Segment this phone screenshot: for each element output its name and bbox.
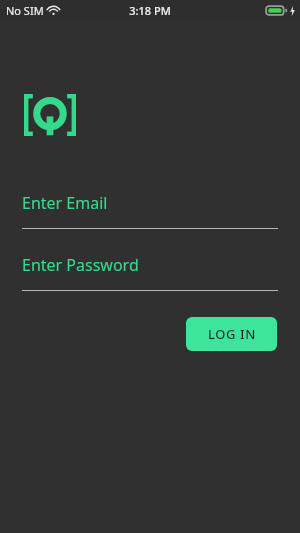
button[interactable]: LOG IN <box>186 317 277 351</box>
staticText: LOG IN <box>208 325 256 343</box>
other: App logo <box>24 94 76 136</box>
button[interactable]: Enter Password <box>22 254 278 291</box>
staticText: Enter Password <box>22 254 139 276</box>
button[interactable]: Enter Email <box>22 192 278 229</box>
staticText: Enter Email <box>22 192 108 214</box>
staticText: 3:18 PM <box>129 3 171 18</box>
staticText: No SIM <box>6 3 44 18</box>
